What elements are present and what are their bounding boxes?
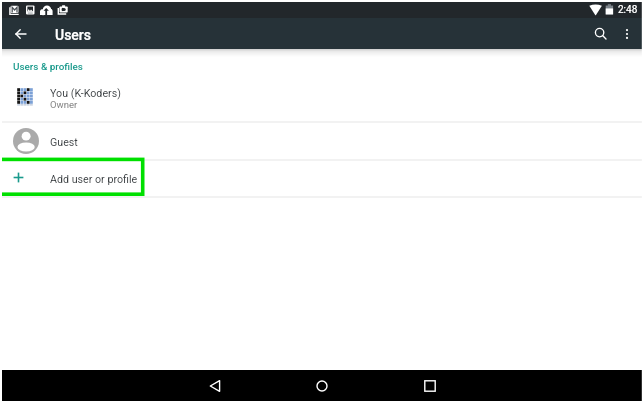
staticText: You (K-Koders)	[50, 87, 121, 100]
button[interactable]: Add user or profile	[0, 159, 644, 196]
button[interactable]: Navigate up	[6, 18, 35, 49]
staticText: Add user or profile	[50, 173, 138, 186]
button[interactable]: More options	[612, 18, 641, 49]
button[interactable]: Home	[306, 370, 338, 401]
button[interactable]: Search	[586, 18, 615, 49]
button[interactable]: Recent apps	[414, 370, 446, 401]
staticText: 2:48	[618, 4, 638, 16]
staticText: Owner	[50, 99, 78, 110]
button[interactable]: Back	[199, 370, 231, 401]
button[interactable]: Guest	[0, 122, 644, 159]
button[interactable]: You (K-Koders)	[0, 85, 644, 122]
staticText: Guest	[50, 136, 78, 149]
staticText: Users & profiles	[13, 61, 83, 73]
staticText: Users	[55, 27, 92, 43]
